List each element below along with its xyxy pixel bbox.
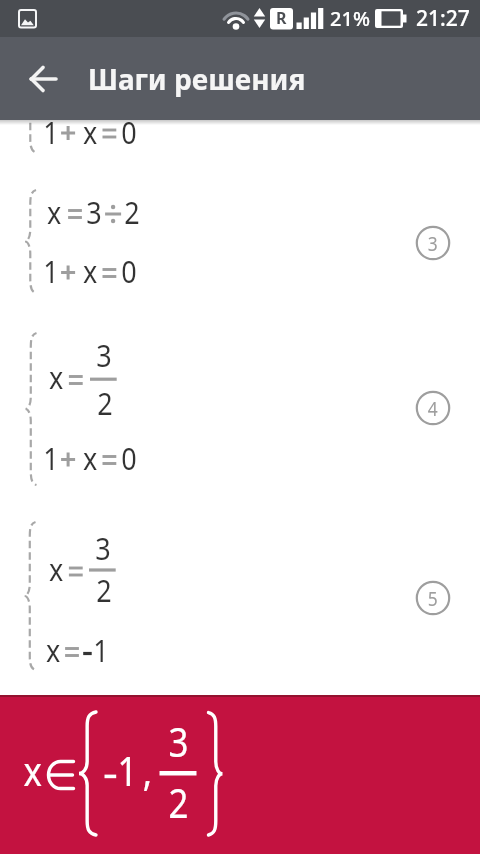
staticText: 1 <box>43 120 59 153</box>
staticText: Шаги решения <box>88 60 306 98</box>
staticText: 0 <box>121 250 137 292</box>
staticText: x <box>83 437 98 479</box>
button[interactable]: x <box>0 695 480 854</box>
staticText: 21% <box>330 5 370 32</box>
staticText: 2 <box>124 191 140 233</box>
staticText: 5 <box>428 585 438 612</box>
staticText: x <box>46 629 61 671</box>
staticText: 1 <box>43 250 59 292</box>
staticText: 1 <box>93 629 109 671</box>
staticText: R <box>276 7 287 29</box>
staticText: , <box>143 743 152 797</box>
staticText: 3 <box>168 714 188 768</box>
staticText: x <box>23 743 42 797</box>
staticText: 4 <box>428 395 438 422</box>
button[interactable] <box>15 51 71 107</box>
staticText: 3 <box>86 191 102 233</box>
staticText: x <box>47 191 62 233</box>
staticText: 0 <box>121 437 137 479</box>
staticText: 0 <box>121 120 137 153</box>
staticText: x <box>49 548 64 590</box>
staticText: x <box>83 250 98 292</box>
staticText: x <box>83 120 98 153</box>
staticText: 21:27 <box>416 4 470 33</box>
staticText: 2 <box>97 382 113 424</box>
staticText: 3 <box>95 527 111 569</box>
staticText: 3 <box>96 334 112 376</box>
button[interactable]: 1 <box>0 120 480 695</box>
staticText: 1 <box>117 743 137 797</box>
staticText: 2 <box>168 775 188 829</box>
staticText: 1 <box>43 437 59 479</box>
staticText: 3 <box>428 230 438 257</box>
staticText: 2 <box>96 569 112 611</box>
staticText: x <box>49 356 64 398</box>
